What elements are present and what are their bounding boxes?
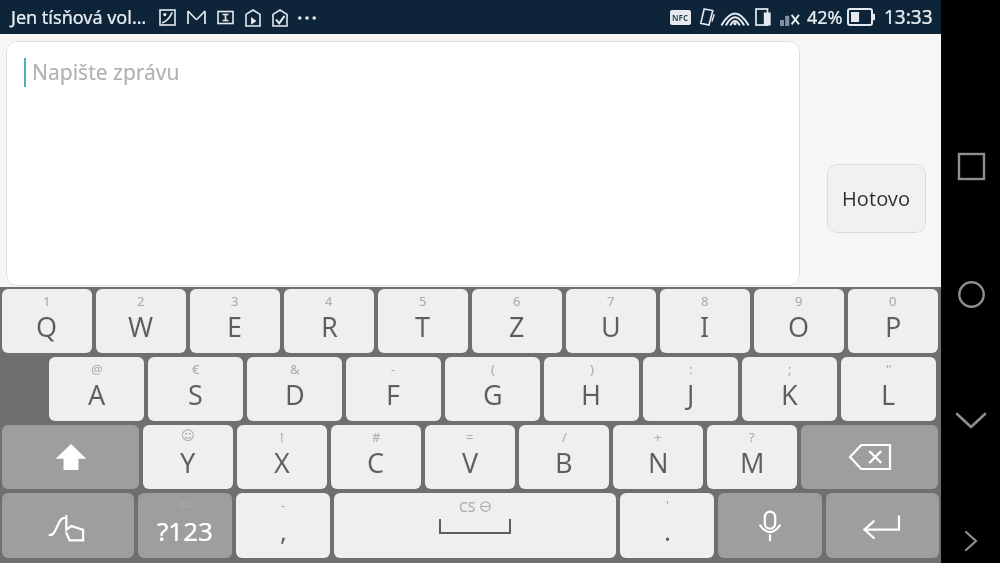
button[interactable]: 3 [190,289,280,353]
staticText: ?123 [157,513,213,548]
staticText: A [88,376,106,413]
staticText: : [689,360,693,378]
staticText: " [886,360,892,378]
staticText: 3 [231,292,239,310]
button[interactable]: & [247,357,342,421]
staticText: / [562,428,567,446]
staticText: Q [36,308,58,345]
staticText: J [687,376,695,413]
staticText: 0 [889,292,897,310]
button[interactable]: ☺ [143,425,233,489]
button[interactable]: More [944,519,998,563]
staticText: E [227,308,243,345]
button[interactable]: shift [2,425,139,489]
staticText: P [885,308,902,345]
staticText: ) [590,360,594,378]
staticText: 42% [807,5,843,30]
staticText: & [290,360,300,378]
staticText: 4 [325,292,333,310]
button[interactable]: 0 [848,289,938,353]
staticText: F [386,376,401,413]
staticText: 2 [137,292,145,310]
button[interactable]: Home [944,267,998,321]
staticText: = [466,428,474,446]
button[interactable]: ! [237,425,327,489]
staticText: Jen tísňová vol… [11,5,147,30]
staticText: 7 [607,292,615,310]
button[interactable]: Napište zprávu [6,41,800,286]
button[interactable]: # [331,425,421,489]
staticText: NFC [672,12,689,23]
button[interactable]: ( [445,357,540,421]
staticText: 13:33 [884,4,933,30]
button[interactable]: hand [2,493,134,558]
staticText: L [881,376,896,413]
staticText: CS [459,497,476,516]
button[interactable]: 5 [378,289,468,353]
button[interactable]: ' [620,493,714,558]
button[interactable]: ; [742,357,837,421]
staticText: B [555,444,573,481]
staticText: 1 [43,292,51,310]
button[interactable]: ) [544,357,639,421]
button[interactable]: Recents [944,139,998,193]
button[interactable]: 2 [96,289,186,353]
button[interactable]: 9 [754,289,844,353]
staticText: Z [509,308,525,345]
staticText: R [321,308,338,345]
button[interactable]: back [801,425,938,489]
staticText: + [654,428,662,446]
button[interactable]: - [346,357,441,421]
button[interactable]: @ [49,357,144,421]
staticText: ▭ [179,496,192,511]
button[interactable]: mic [718,493,822,558]
button[interactable]: + [613,425,703,489]
button[interactable]: / [519,425,609,489]
button[interactable]: 6 [472,289,562,353]
staticText: , [280,513,287,548]
button[interactable]: 8 [660,289,750,353]
staticText: Y [180,444,196,481]
button[interactable]: 4 [284,289,374,353]
button[interactable]: space [334,493,616,558]
staticText: T [415,308,431,345]
staticText: ( [491,360,495,378]
button[interactable]: - [236,493,330,558]
staticText: X [274,444,290,481]
button[interactable]: Hide keyboard [944,393,998,447]
staticText: . [664,513,671,548]
staticText: Napište zprávu [32,58,180,87]
staticText: ? [749,428,755,446]
staticText: ☺ [181,428,195,443]
staticText: - [391,360,396,378]
staticText: 6 [513,292,521,310]
staticText: K [781,376,798,413]
staticText: H [581,376,602,413]
staticText: C [367,444,385,481]
button[interactable]: ▭ [138,493,232,558]
staticText: ! [280,428,284,446]
button[interactable]: enter [826,493,939,558]
staticText: W [128,308,154,345]
button[interactable]: = [425,425,515,489]
staticText: € [192,360,200,378]
staticText: Hotovo [842,185,911,212]
staticText: V [462,444,479,481]
staticText: U [601,308,621,345]
button[interactable]: : [643,357,738,421]
staticText: 9 [795,292,803,310]
button[interactable]: 7 [566,289,656,353]
staticText: ' [666,496,669,514]
staticText: - [281,496,286,514]
staticText: I [700,308,710,345]
staticText: N [648,444,669,481]
button[interactable]: " [841,357,936,421]
button[interactable]: € [148,357,243,421]
staticText: 5 [419,292,427,310]
button[interactable]: 1 [2,289,92,353]
button[interactable]: ? [707,425,797,489]
staticText: @ [91,360,103,378]
staticText: 8 [701,292,709,310]
button[interactable]: Hotovo [827,164,926,233]
staticText: O [788,308,810,345]
